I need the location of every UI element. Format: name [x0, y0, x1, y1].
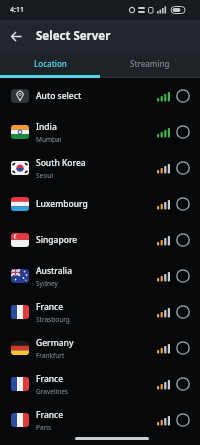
button[interactable]: France	[0, 366, 200, 402]
button[interactable]: Streaming	[100, 52, 200, 75]
button[interactable]: Location	[0, 52, 100, 75]
staticText: France	[36, 409, 64, 421]
staticText: South Korea	[36, 157, 86, 169]
staticText: Frankfurt	[36, 351, 65, 360]
button[interactable]: India	[0, 114, 200, 150]
button[interactable]: Germany	[0, 330, 200, 366]
staticText: Auto select	[36, 90, 82, 102]
button[interactable]: France	[0, 294, 200, 330]
staticText: Australia	[36, 265, 73, 277]
button[interactable]	[0, 20, 32, 52]
staticText: France	[36, 301, 64, 313]
staticText: Luxembourg	[36, 198, 88, 210]
staticText: 4:11	[10, 5, 24, 15]
button[interactable]: Australia	[0, 258, 200, 294]
staticText: Gravelines	[36, 387, 69, 396]
button[interactable]: South Korea	[0, 150, 200, 186]
staticText: Singapore	[36, 234, 78, 246]
staticText: France	[36, 373, 64, 385]
staticText: Sydney	[36, 279, 58, 288]
staticText: Location	[34, 58, 67, 69]
staticText: Select Server	[36, 28, 111, 44]
staticText: Seoul	[36, 171, 53, 180]
staticText: Mumbai	[36, 135, 62, 144]
button[interactable]: Auto select	[0, 78, 200, 114]
staticText: India	[36, 121, 57, 133]
button[interactable]: France	[0, 402, 200, 438]
button[interactable]: Luxembourg	[0, 186, 200, 222]
staticText: Paris	[36, 423, 52, 432]
staticText: Germany	[36, 337, 74, 349]
staticText: Streaming	[130, 58, 170, 69]
staticText: Strasbourg	[36, 315, 70, 324]
button[interactable]: Singapore	[0, 222, 200, 258]
